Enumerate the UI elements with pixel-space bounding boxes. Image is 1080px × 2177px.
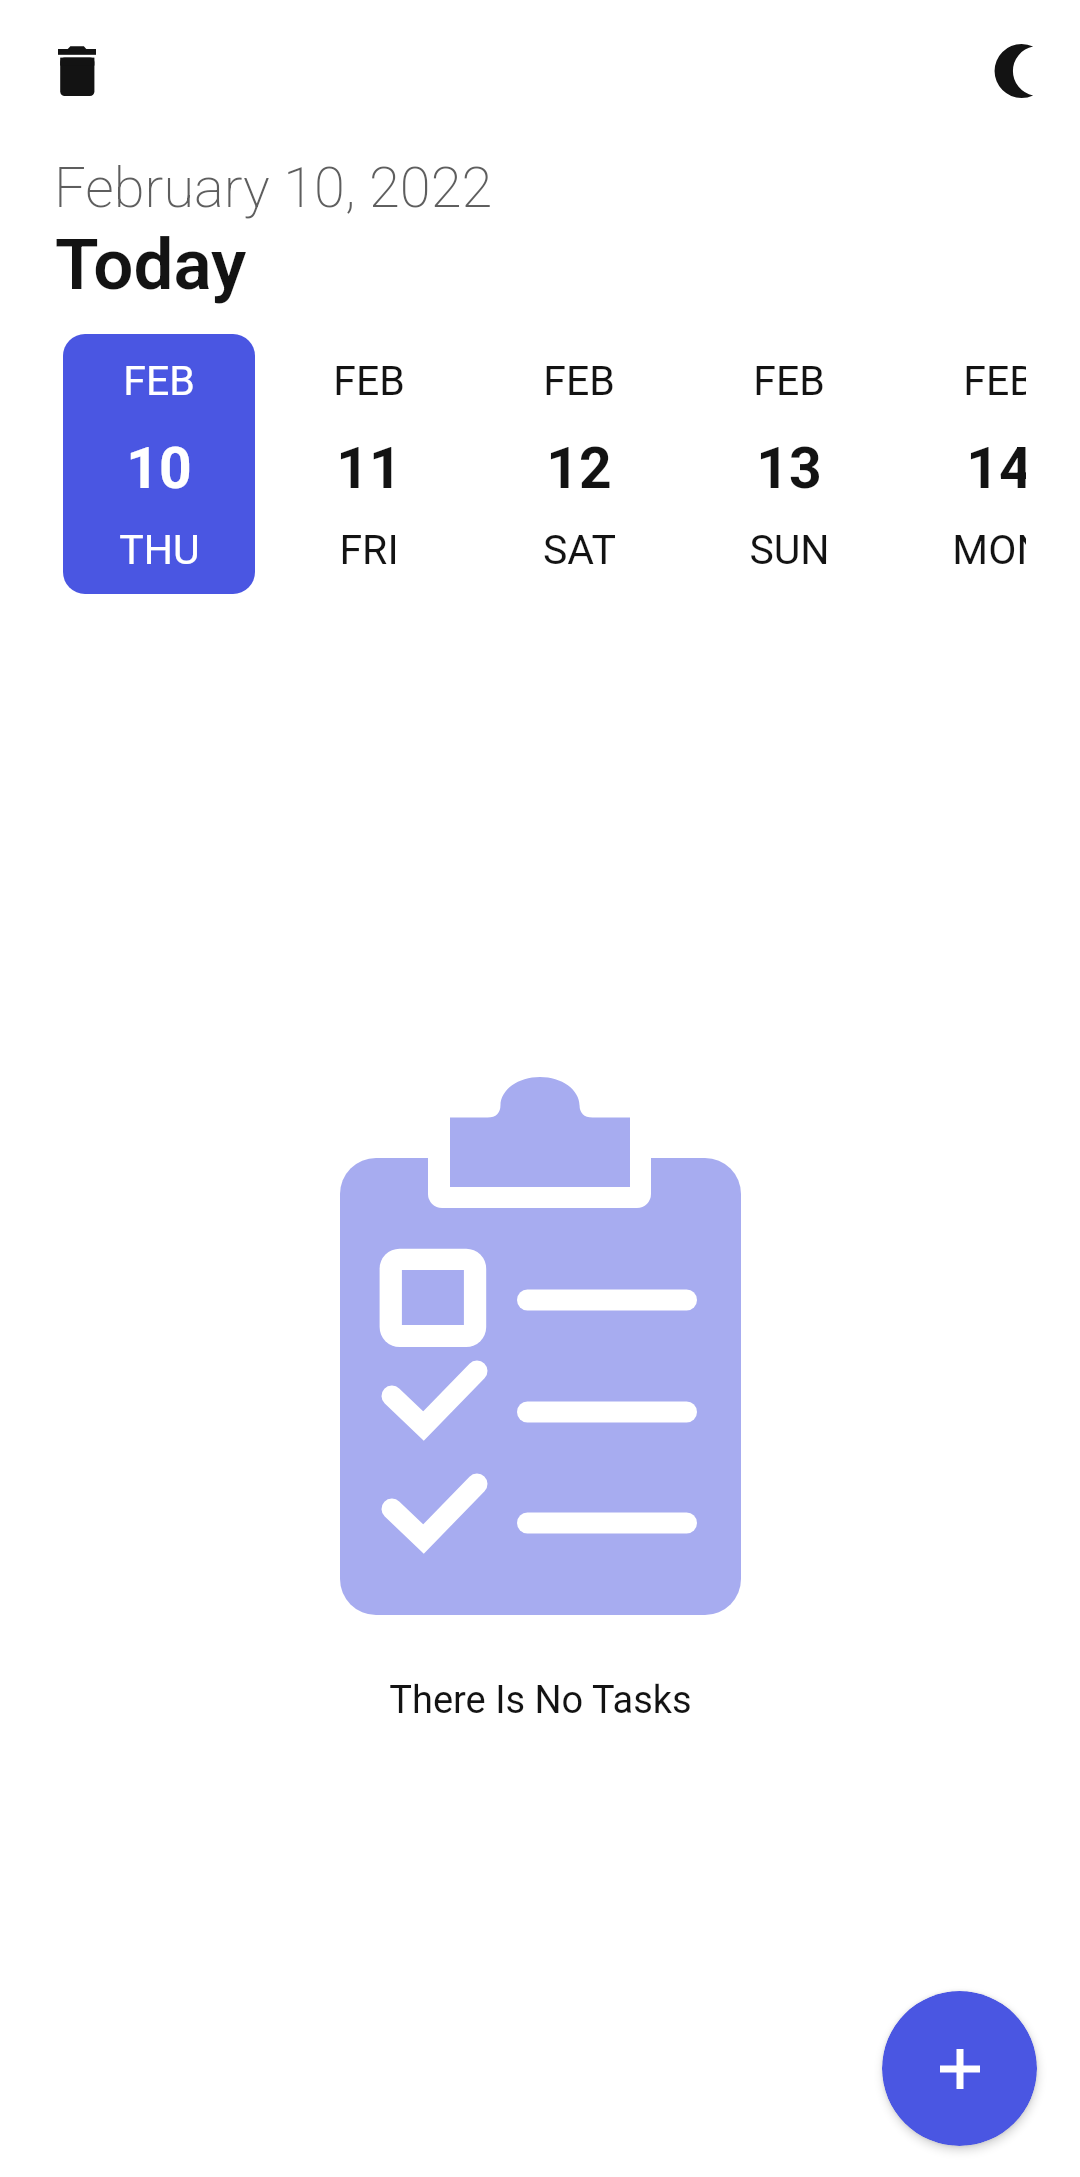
button[interactable]: FEB bbox=[273, 334, 465, 594]
button[interactable]: FEB bbox=[483, 334, 675, 594]
button[interactable]: Add task bbox=[882, 1991, 1037, 2146]
staticText: FRI bbox=[339, 526, 399, 574]
staticText: FEB bbox=[753, 357, 825, 405]
button[interactable]: Delete all tasks bbox=[19, 7, 135, 135]
staticText: 13 bbox=[756, 435, 822, 502]
button[interactable]: Toggle dark mode bbox=[965, 7, 1080, 135]
staticText: 14 bbox=[966, 435, 1026, 502]
staticText: FEB bbox=[963, 357, 1026, 405]
staticText: 12 bbox=[546, 435, 612, 502]
staticText: Today bbox=[55, 223, 247, 306]
staticText: February 10, 2022 bbox=[54, 155, 493, 221]
staticText: 10 bbox=[126, 435, 192, 502]
staticText: FEB bbox=[333, 357, 405, 405]
button[interactable]: FEB bbox=[903, 334, 1026, 594]
staticText: THU bbox=[119, 526, 200, 574]
staticText: SUN bbox=[749, 526, 830, 574]
staticText: MON bbox=[952, 526, 1026, 574]
staticText: FEB bbox=[543, 357, 615, 405]
staticText: 11 bbox=[336, 435, 402, 502]
staticText: SAT bbox=[543, 526, 616, 574]
staticText: FEB bbox=[123, 357, 195, 405]
button[interactable]: FEB bbox=[693, 334, 885, 594]
staticText: There Is No Tasks bbox=[389, 1678, 692, 1723]
button[interactable]: FEB bbox=[63, 334, 255, 594]
